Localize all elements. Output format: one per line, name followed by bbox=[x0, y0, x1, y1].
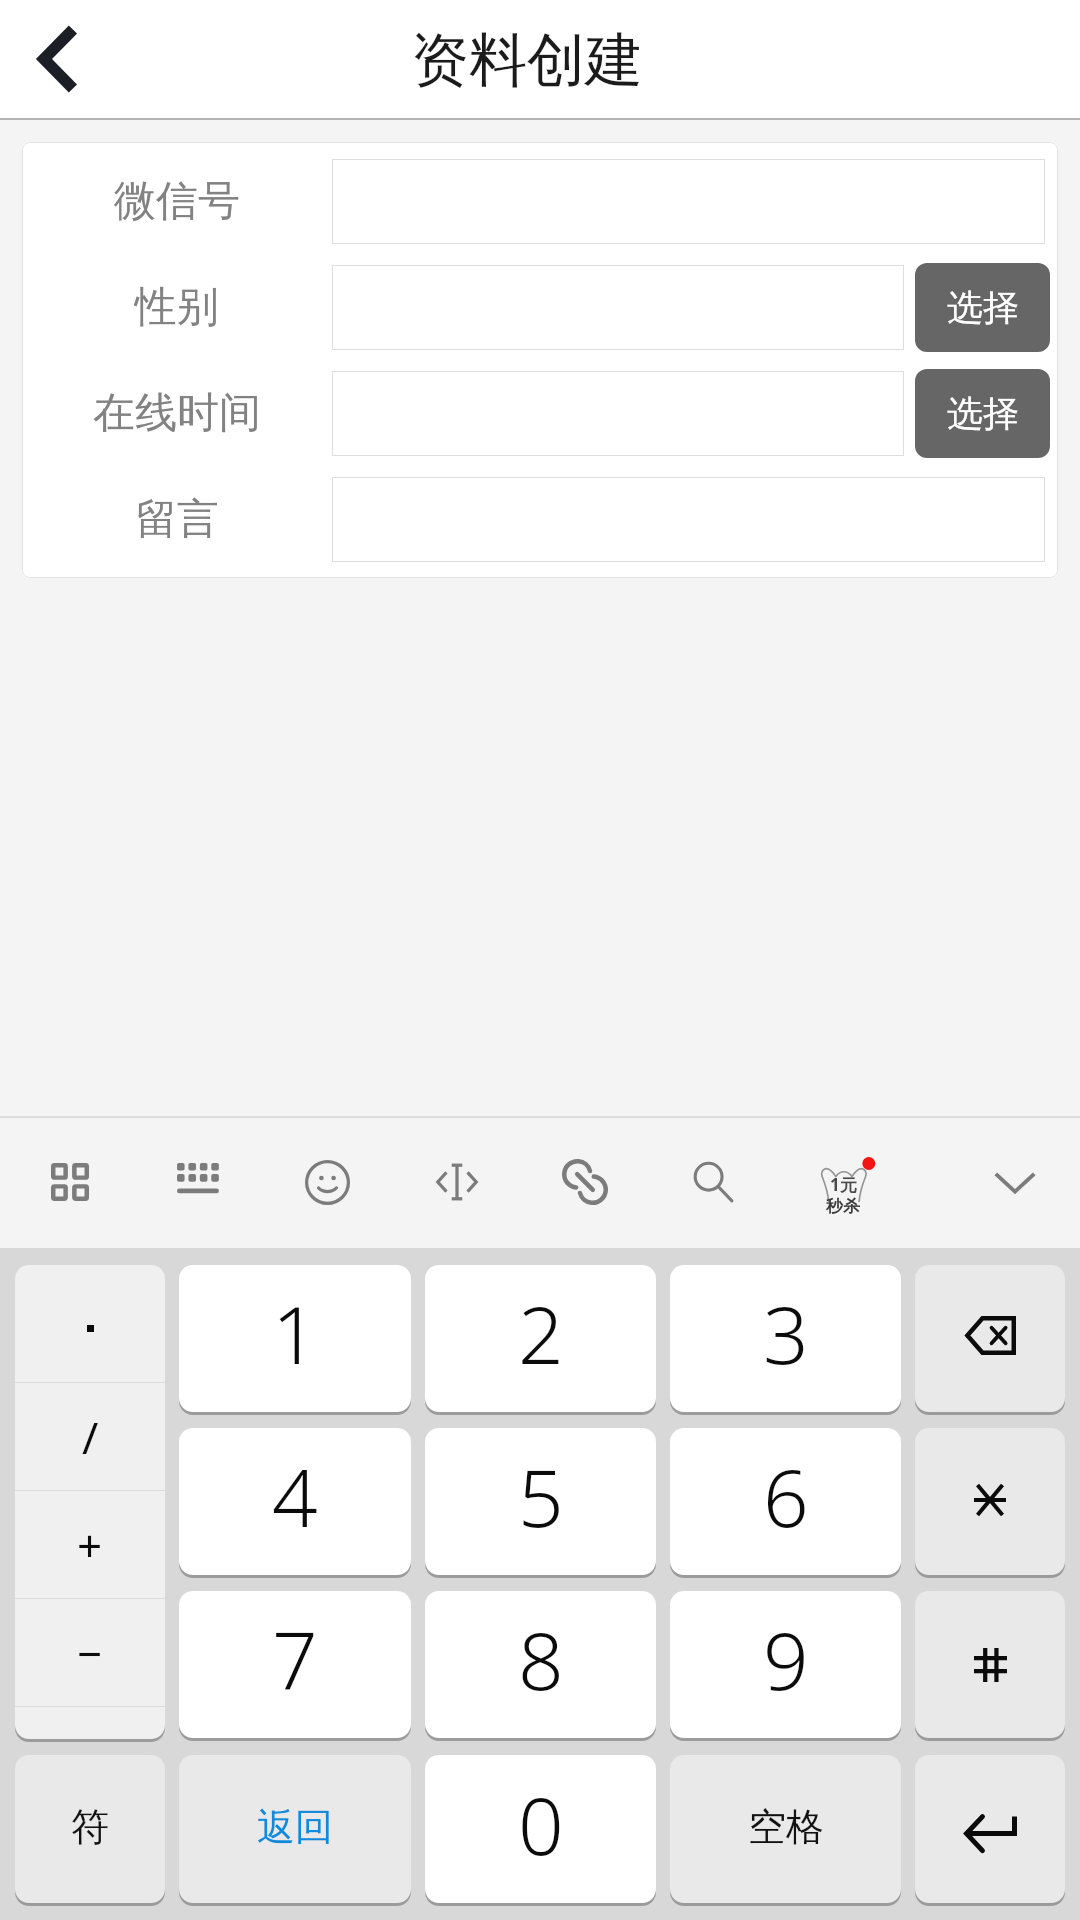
staticText: 选择 bbox=[947, 391, 1019, 436]
staticText: 0 bbox=[518, 1769, 564, 1878]
button[interactable] bbox=[332, 265, 904, 350]
button[interactable]: 0 bbox=[425, 1755, 656, 1903]
staticText: 1元 bbox=[830, 1173, 857, 1196]
button[interactable]: + bbox=[15, 1491, 165, 1598]
button[interactable]: Back bbox=[0, 0, 112, 119]
staticText: 空格 bbox=[748, 1803, 824, 1851]
staticText: 9 bbox=[763, 1604, 809, 1713]
button[interactable]: 返回 bbox=[179, 1755, 411, 1903]
staticText: 返回 bbox=[257, 1803, 333, 1851]
button[interactable]: 6 bbox=[670, 1428, 901, 1575]
staticText: + bbox=[77, 1515, 103, 1575]
button[interactable]: Hash bbox=[915, 1591, 1065, 1738]
button[interactable]: 选择 bbox=[915, 263, 1050, 352]
button[interactable]: 选择 bbox=[915, 369, 1050, 458]
button[interactable]: 3 bbox=[670, 1265, 901, 1412]
button[interactable]: 1 yuan flash sale bbox=[787, 1116, 899, 1248]
staticText: 4 bbox=[272, 1441, 318, 1550]
button[interactable]: 9 bbox=[670, 1591, 901, 1738]
button[interactable]: Star bbox=[915, 1428, 1065, 1575]
button[interactable]: 5 bbox=[425, 1428, 656, 1575]
staticText: − bbox=[77, 1623, 103, 1683]
button[interactable]: Backspace bbox=[915, 1265, 1065, 1412]
button[interactable]: Keyboard layout bbox=[142, 1116, 254, 1248]
button[interactable]: 符 bbox=[15, 1755, 165, 1903]
staticText: 性别 bbox=[135, 281, 219, 334]
staticText: 7 bbox=[272, 1604, 318, 1713]
staticText: / bbox=[82, 1407, 99, 1467]
button[interactable]: Enter bbox=[915, 1755, 1065, 1903]
button[interactable]: 1 bbox=[179, 1265, 411, 1412]
staticText: 符 bbox=[71, 1803, 109, 1851]
staticText: 2 bbox=[518, 1278, 564, 1387]
staticText: 1 bbox=[272, 1278, 318, 1387]
button[interactable]: 8 bbox=[425, 1591, 656, 1738]
button[interactable]: / bbox=[15, 1383, 165, 1490]
button[interactable]: Dot bbox=[15, 1274, 165, 1382]
button[interactable]: 空格 bbox=[670, 1755, 901, 1903]
staticText: 秒杀 bbox=[826, 1196, 860, 1217]
staticText: 在线时间 bbox=[93, 387, 261, 440]
button[interactable]: Emoji bbox=[271, 1116, 383, 1248]
staticText: 选择 bbox=[947, 285, 1019, 330]
staticText: 5 bbox=[518, 1441, 564, 1550]
staticText: 3 bbox=[763, 1278, 809, 1387]
button[interactable] bbox=[332, 371, 904, 456]
staticText: 留言 bbox=[135, 493, 219, 546]
staticText: 8 bbox=[518, 1604, 564, 1713]
staticText: 资料创建 bbox=[411, 24, 643, 97]
button[interactable]: Hide keyboard bbox=[959, 1116, 1071, 1248]
button[interactable]: Move cursor bbox=[401, 1116, 513, 1248]
button[interactable]: Search bbox=[657, 1116, 769, 1248]
button[interactable]: 2 bbox=[425, 1265, 656, 1412]
button[interactable]: 7 bbox=[179, 1591, 411, 1738]
button[interactable] bbox=[332, 477, 1045, 562]
staticText: 6 bbox=[763, 1441, 809, 1550]
button[interactable]: Apps bbox=[14, 1116, 126, 1248]
button[interactable]: 4 bbox=[179, 1428, 411, 1575]
staticText: 微信号 bbox=[114, 175, 240, 228]
button[interactable] bbox=[332, 159, 1045, 244]
button[interactable]: Clipboard bbox=[529, 1116, 641, 1248]
button[interactable]: − bbox=[15, 1599, 165, 1706]
